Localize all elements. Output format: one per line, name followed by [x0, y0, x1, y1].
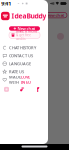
staticText: 9:41 — [1, 0, 11, 7]
button[interactable]: RATE US — [0, 68, 48, 76]
button[interactable]: CHAT HISTORY — [0, 44, 48, 52]
button[interactable]: TikTok — [20, 87, 25, 92]
button[interactable]: New chat — [9, 26, 40, 31]
staticText: New chat — [46, 12, 64, 18]
staticText: MADE WITH — [9, 74, 21, 85]
button[interactable]: Invite a friend — [9, 32, 40, 38]
staticText: RATE US — [9, 69, 24, 74]
staticText: CHAT HISTORY — [9, 45, 36, 50]
staticText: LANGUAGE — [9, 61, 31, 66]
button[interactable]: Instagram — [4, 87, 9, 92]
staticText: f — [37, 85, 40, 94]
button[interactable]: CONTACT US — [0, 52, 48, 60]
staticText: Invite a friend — [16, 30, 37, 33]
button[interactable]: Facebook — [36, 87, 41, 92]
staticText: IdeaBuddy — [11, 12, 46, 20]
staticText: & get free credits — [16, 33, 31, 41]
button[interactable]: LANGUAGE — [0, 60, 48, 68]
staticText: LOVE IN EU — [21, 74, 31, 85]
staticText: New chat — [17, 26, 35, 31]
staticText: CONTACT US — [9, 53, 33, 58]
